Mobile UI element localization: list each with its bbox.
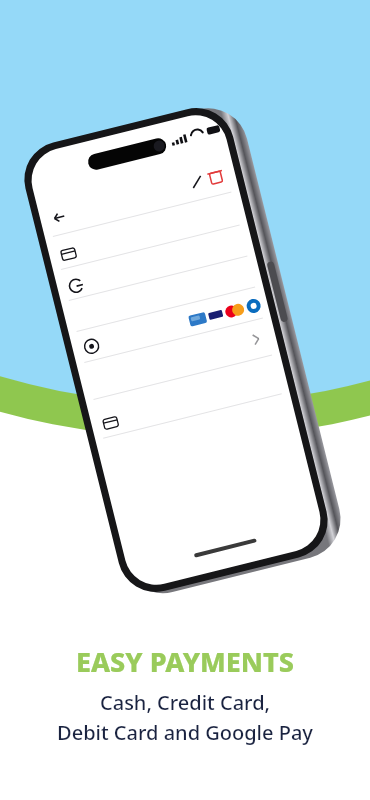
other: Payment Method screen <box>115 95 370 800</box>
staticText: EASY PAYMENTS <box>76 643 295 680</box>
staticText: Cash, Credit Card, Debit Card and Google… <box>57 689 313 746</box>
